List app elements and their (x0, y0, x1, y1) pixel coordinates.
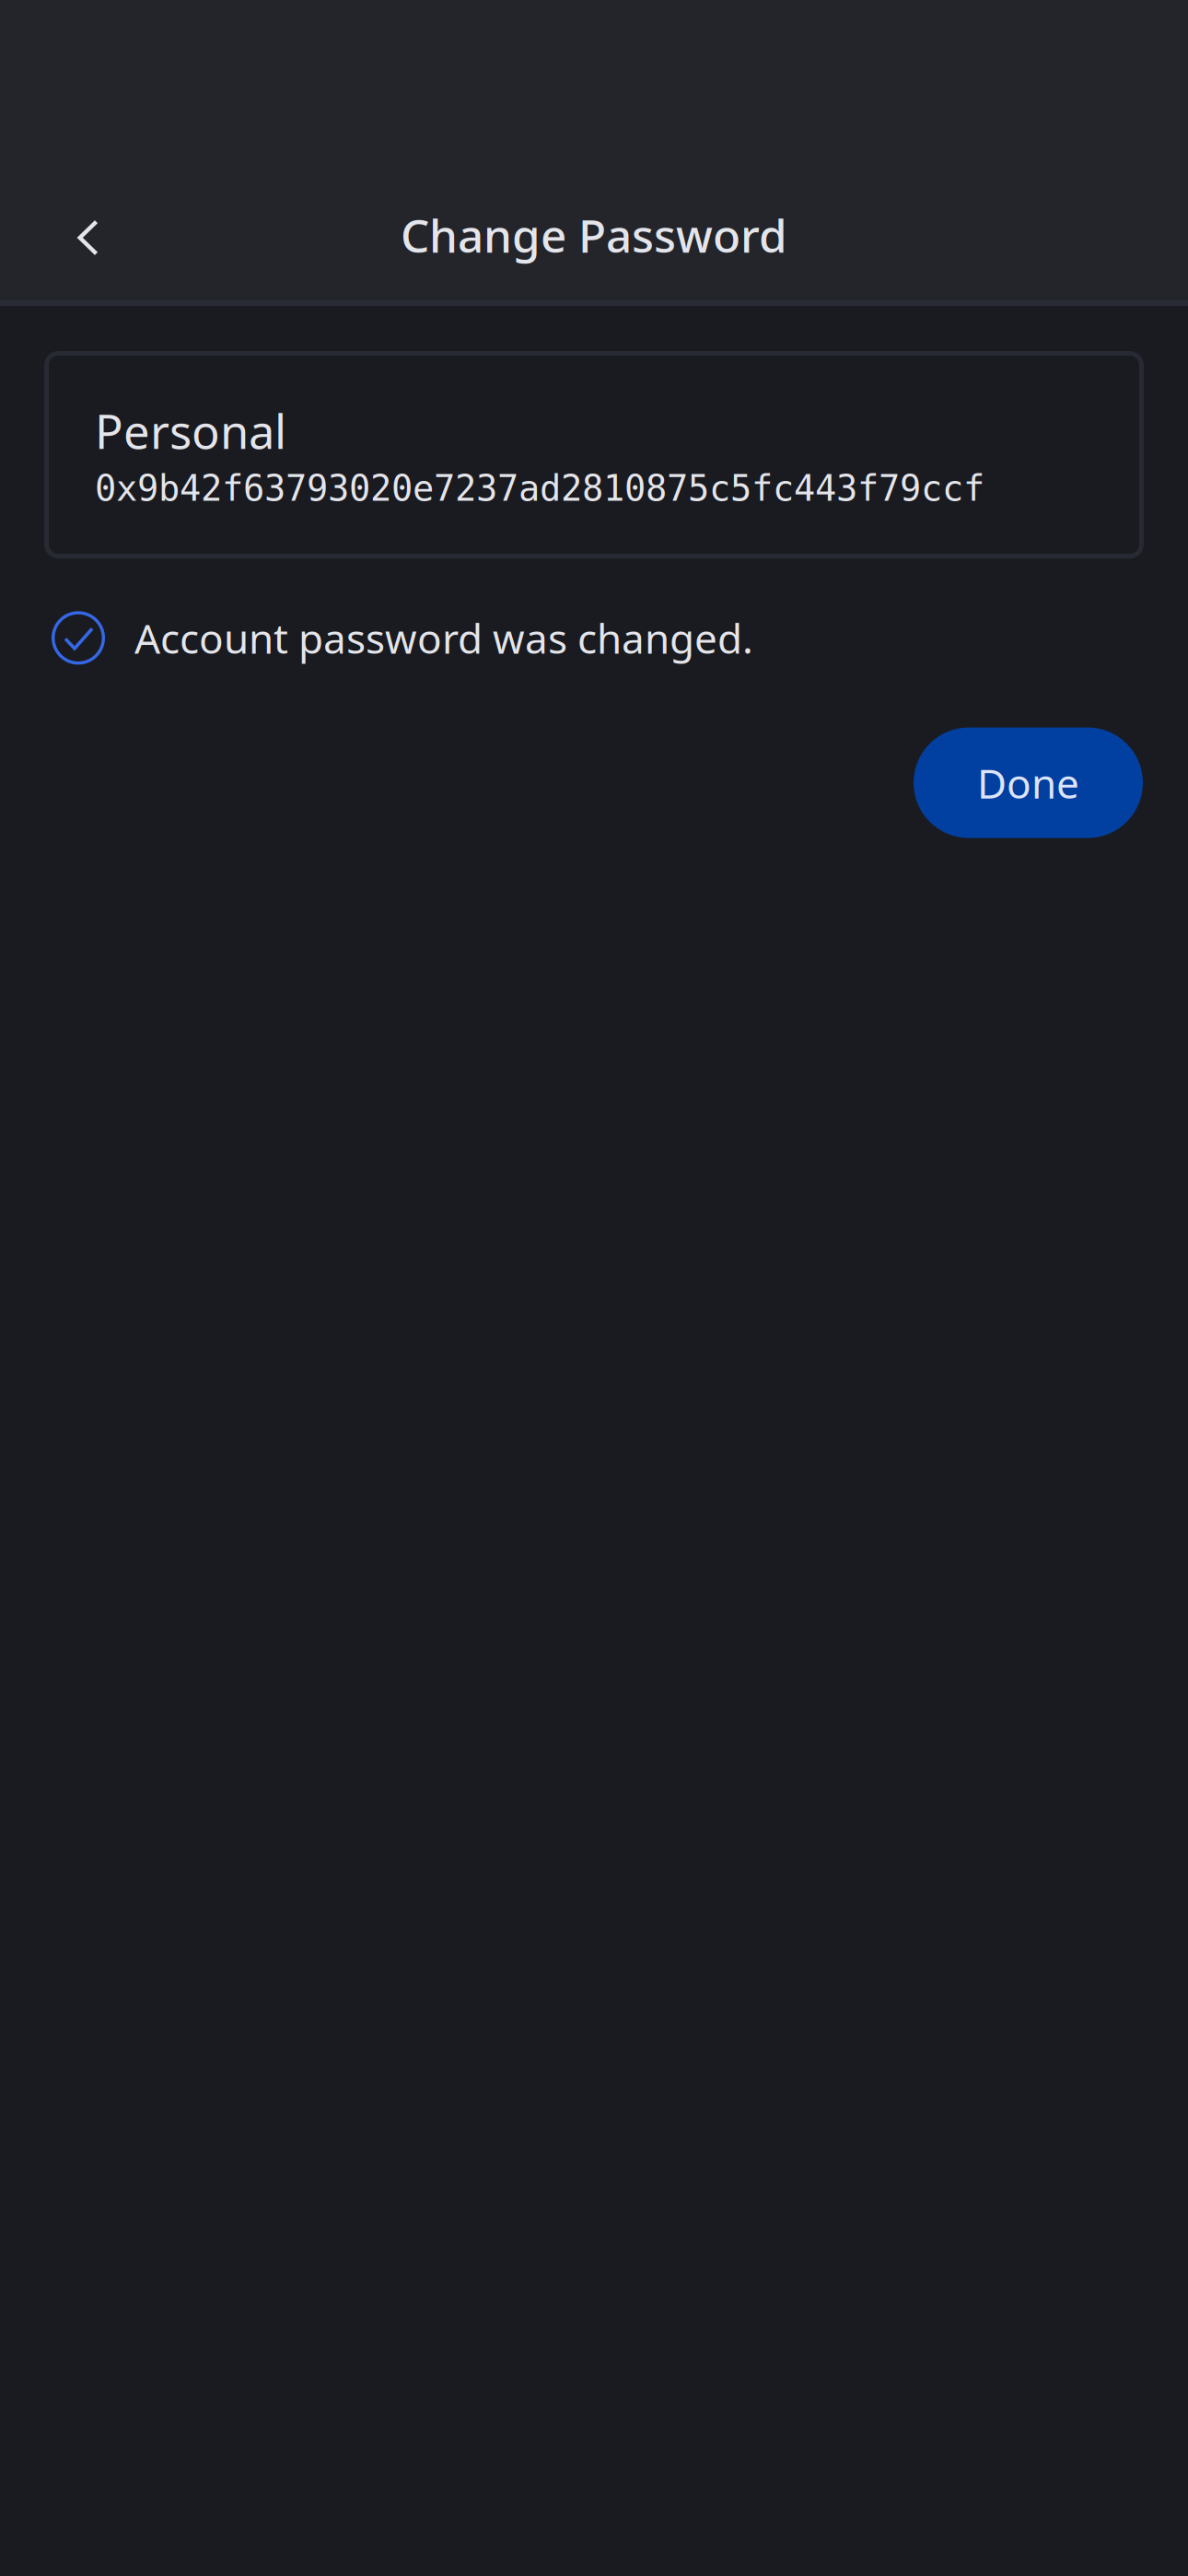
staticText: Account password was changed. (134, 611, 753, 665)
button[interactable]: Done (914, 727, 1143, 838)
staticText: Change Password (401, 205, 787, 265)
button[interactable]: Back (50, 196, 127, 274)
staticText: Personal (95, 400, 286, 462)
staticText: Done (977, 756, 1079, 810)
staticText: 0x9b42f63793020e7237ad2810875c5fc443f79c… (95, 468, 984, 509)
